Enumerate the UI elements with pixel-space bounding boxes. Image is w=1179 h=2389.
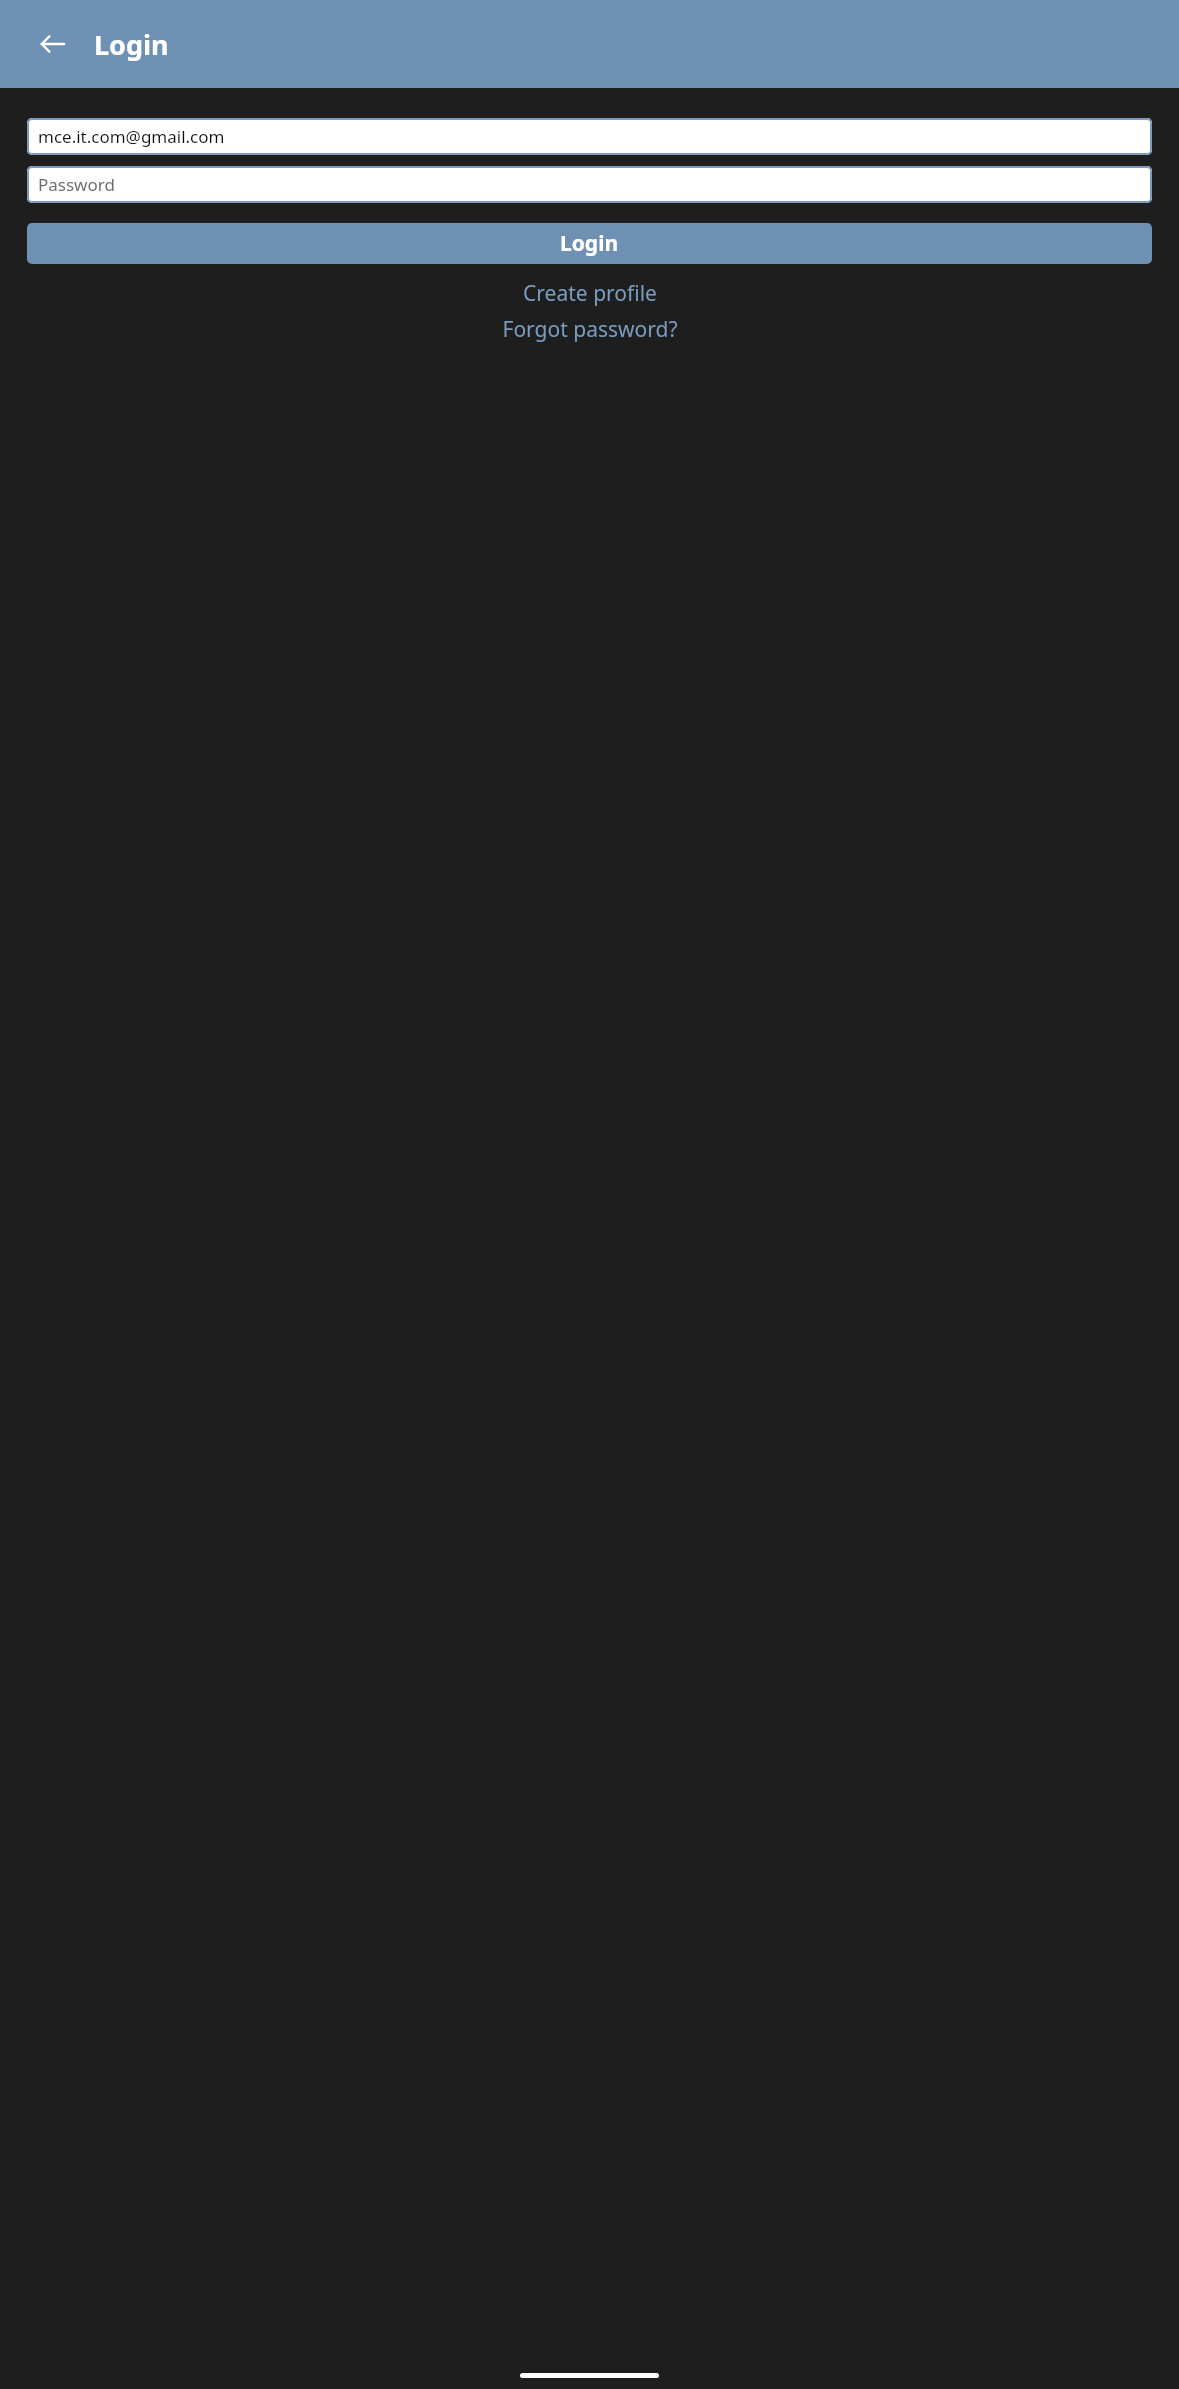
- staticText: mce.it.com@gmail.com: [38, 125, 225, 148]
- button[interactable]: Password: [27, 166, 1152, 203]
- staticText: Login: [94, 26, 169, 63]
- button[interactable]: Forgot password?: [27, 314, 1152, 345]
- staticText: Create profile: [523, 279, 657, 308]
- button[interactable]: mce.it.com@gmail.com: [27, 118, 1152, 155]
- button[interactable]: Login: [27, 223, 1152, 264]
- staticText: Login: [560, 229, 619, 258]
- staticText: Forgot password?: [502, 315, 678, 344]
- button[interactable]: Create profile: [27, 278, 1152, 309]
- button[interactable]: Back: [30, 21, 76, 67]
- staticText: Password: [38, 173, 115, 196]
